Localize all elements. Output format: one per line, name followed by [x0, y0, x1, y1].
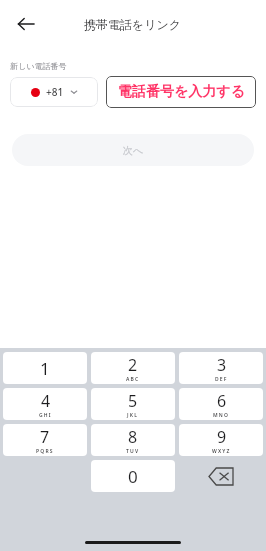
button[interactable]: 電話番号を入力する — [106, 76, 256, 108]
staticText: +81 — [46, 85, 64, 99]
button[interactable]: 次へ — [12, 134, 254, 166]
staticText: 6 — [217, 390, 227, 412]
staticText: JKL — [127, 412, 139, 419]
staticText: 2 — [128, 354, 138, 376]
staticText: 0 — [128, 465, 138, 488]
staticText: 4 — [41, 390, 51, 412]
button[interactable]: 7 — [3, 424, 87, 456]
staticText: 8 — [128, 426, 138, 448]
staticText: 携帯電話をリンク — [84, 17, 182, 32]
button[interactable]: Back — [8, 6, 44, 42]
button[interactable]: 4 — [3, 388, 87, 420]
button[interactable]: 5 — [91, 388, 175, 420]
staticText: DEF — [215, 376, 228, 383]
button[interactable]: 8 — [91, 424, 175, 456]
staticText: WXYZ — [212, 448, 231, 455]
staticText: TUV — [126, 448, 140, 455]
button[interactable]: 9 — [179, 424, 263, 456]
button[interactable]: 3 — [179, 352, 263, 384]
staticText: 次へ — [123, 144, 144, 157]
button[interactable]: 0 — [91, 460, 175, 492]
button[interactable]: 1 — [3, 352, 87, 384]
button[interactable]: Backspace — [179, 460, 263, 492]
staticText: GHI — [39, 412, 52, 419]
staticText: PQRS — [36, 448, 54, 455]
staticText: 新しい電話番号 — [10, 61, 67, 71]
staticText: 9 — [217, 426, 227, 448]
button[interactable]: +81 — [10, 77, 98, 107]
staticText: 3 — [217, 354, 227, 376]
staticText: 1 — [40, 357, 50, 380]
staticText: 5 — [128, 390, 138, 412]
staticText: 電話番号を入力する — [118, 83, 245, 101]
staticText: ABC — [126, 376, 140, 383]
button[interactable]: 6 — [179, 388, 263, 420]
button[interactable]: 2 — [91, 352, 175, 384]
staticText: 7 — [40, 426, 50, 448]
staticText: MNO — [213, 412, 230, 419]
